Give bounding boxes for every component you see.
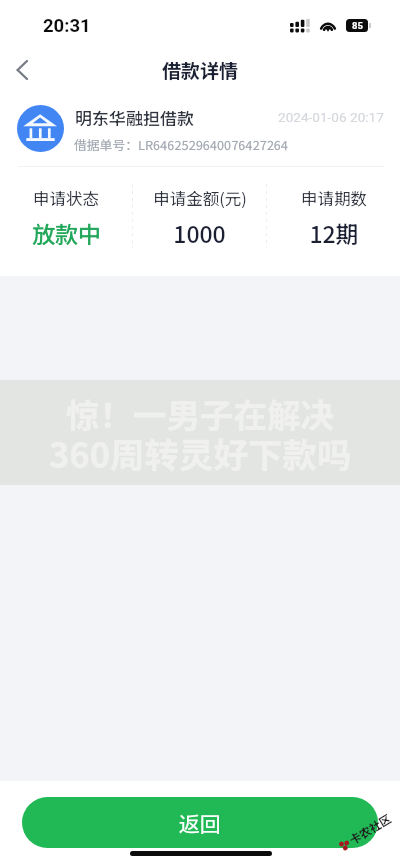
staticText: 放款中 <box>32 216 101 249</box>
staticText: 85 <box>352 20 363 31</box>
staticText: 12期 <box>309 216 359 249</box>
staticText: 借款详情 <box>162 56 239 84</box>
staticText: 1000 <box>173 216 226 249</box>
staticText: 申请状态 <box>33 186 99 210</box>
staticText: 卡农社区 <box>346 810 394 849</box>
staticText: 20:31 <box>43 15 91 37</box>
staticText: 2024-01-06 20:17 <box>278 109 384 125</box>
button[interactable]: Back <box>0 48 44 92</box>
staticText: 申请金额(元) <box>153 186 247 210</box>
staticText: 360周转灵好下款吗 <box>49 428 352 478</box>
staticText: 借据单号：LR6462529640076427264 <box>74 135 289 154</box>
staticText: 明东华融担借款 <box>75 105 194 130</box>
staticText: 惊！一男子在解决 <box>66 389 334 438</box>
staticText: 返回 <box>179 808 221 838</box>
staticText: 申请期数 <box>301 186 367 210</box>
button[interactable]: 返回 <box>22 797 378 848</box>
